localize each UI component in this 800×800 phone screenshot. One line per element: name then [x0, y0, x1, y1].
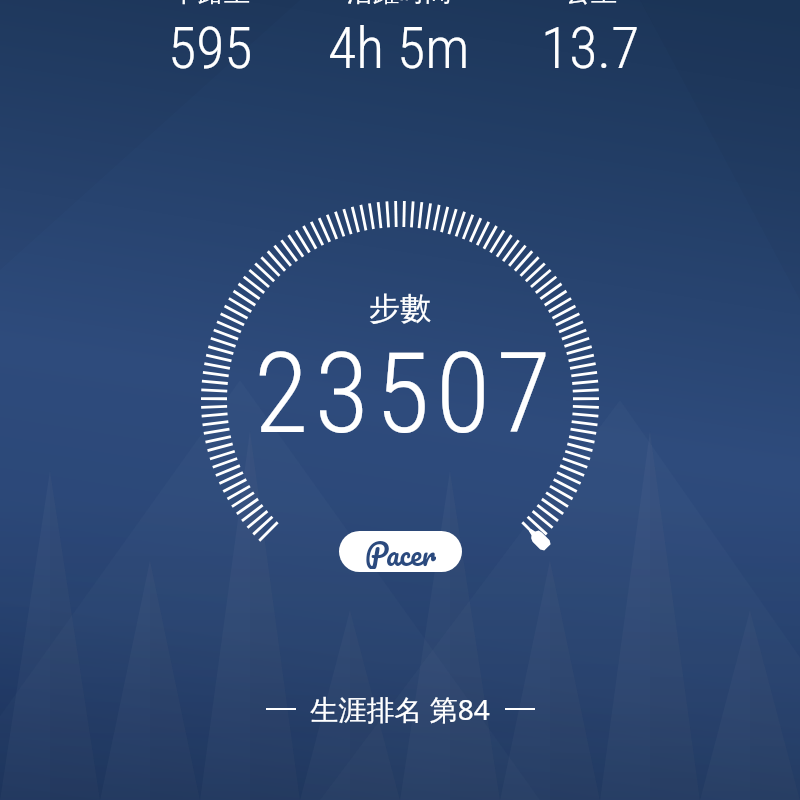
button[interactable]: 生涯排名 第84	[266, 690, 535, 728]
staticText: 公里	[565, 0, 617, 9]
button[interactable]: 活躍時間	[289, 0, 509, 82]
staticText: Pacer	[365, 531, 436, 569]
staticText: 卡路里	[172, 0, 250, 9]
staticText: 23507	[254, 328, 558, 459]
staticText: 13.7	[541, 14, 640, 82]
button[interactable]: Pacer	[339, 531, 462, 572]
button[interactable]: 公里	[480, 0, 700, 82]
button[interactable]: 卡路里	[100, 0, 320, 82]
staticText: 4h 5m	[328, 14, 470, 82]
staticText: 步數	[369, 289, 431, 328]
staticText: 生涯排名 第84	[296, 690, 505, 728]
staticText: 595	[168, 14, 253, 82]
staticText: 活躍時間	[347, 0, 451, 9]
